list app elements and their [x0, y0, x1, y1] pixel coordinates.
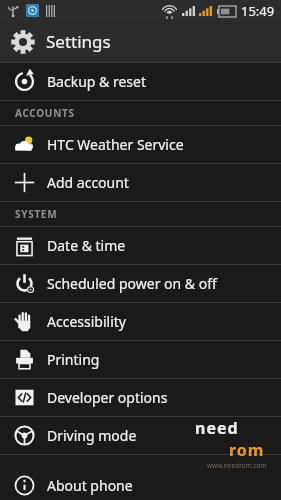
button[interactable]: Date & time — [0, 227, 281, 264]
button[interactable]: Add account — [0, 164, 281, 201]
staticText: Add account — [47, 173, 129, 192]
staticText: ACCOUNTS — [15, 106, 75, 120]
button[interactable]: Driving mode — [0, 417, 281, 454]
staticText: Settings — [46, 30, 111, 53]
staticText: 15:49 — [241, 2, 275, 20]
button[interactable]: Printing — [0, 341, 281, 378]
staticText: Backup & reset — [47, 72, 146, 91]
staticText: need — [195, 417, 239, 439]
staticText: rom — [229, 439, 265, 461]
staticText: Driving mode — [47, 426, 137, 445]
other: Settings icon — [10, 29, 36, 55]
button[interactable]: Developer options — [0, 379, 281, 416]
button[interactable]: Settings icon — [0, 21, 281, 62]
staticText: SYSTEM — [15, 207, 58, 221]
button[interactable]: Backup & reset — [0, 63, 281, 100]
staticText: Accessibility — [47, 312, 126, 331]
button[interactable]: About phone — [0, 470, 281, 500]
staticText: www.needrom.com — [207, 461, 267, 470]
staticText: Scheduled power on & off — [47, 274, 217, 293]
button[interactable]: HTC Weather Service — [0, 126, 281, 163]
button[interactable]: Accessibility — [0, 303, 281, 340]
staticText: Date & time — [47, 236, 126, 255]
staticText: About phone — [47, 476, 133, 495]
staticText: HTC Weather Service — [47, 135, 184, 154]
staticText: Printing — [47, 350, 100, 369]
button[interactable]: Scheduled power on & off — [0, 265, 281, 302]
staticText: Developer options — [47, 388, 168, 407]
